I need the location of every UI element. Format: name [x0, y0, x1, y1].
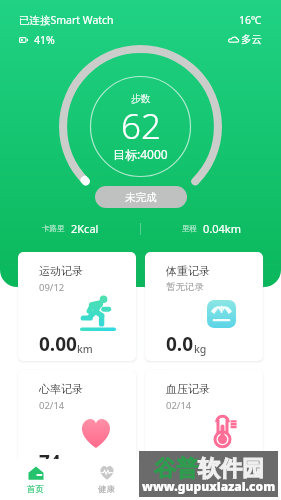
button[interactable]: 体重记录 — [145, 252, 263, 361]
staticText: 运动记录 — [39, 264, 83, 278]
staticText: 0.00 — [39, 331, 77, 357]
staticText: 谷普 — [154, 455, 198, 483]
staticText: 软件园 — [198, 455, 264, 483]
staticText: 多云 — [241, 33, 262, 46]
staticText: 首页 — [27, 484, 44, 495]
button[interactable]: 未完成 — [95, 186, 187, 208]
staticText: www.gupuxlazal.com — [142, 478, 276, 494]
staticText: 卡路里 — [42, 224, 65, 233]
staticText: 步数 — [131, 93, 151, 105]
staticText: 未完成 — [125, 191, 157, 204]
staticText: 09/12 — [39, 281, 65, 294]
staticText: 心率记录 — [39, 382, 83, 396]
staticText: /80 — [199, 460, 216, 474]
staticText: kg — [194, 342, 207, 356]
button[interactable]: 运动记录 — [18, 252, 136, 361]
staticText: 16℃ — [239, 13, 262, 27]
button[interactable]: 设备 — [141, 459, 211, 500]
staticText: 0.0 — [166, 331, 194, 357]
staticText: 41% — [34, 33, 55, 47]
staticText: 74 — [39, 449, 61, 475]
staticText: km — [77, 342, 93, 356]
staticText: 健康 — [98, 484, 115, 495]
staticText: 已连接Smart Watch — [19, 13, 114, 27]
staticText: 血压记录 — [166, 382, 210, 396]
button[interactable]: 健康 — [71, 459, 141, 500]
staticText: 02/14 — [39, 399, 65, 412]
staticText: 目标:4000 — [113, 146, 168, 162]
staticText: 0.04km — [203, 221, 241, 236]
staticText: 02/14 — [166, 399, 192, 412]
button[interactable]: 首页 — [0, 459, 71, 500]
button[interactable]: 心率记录 — [18, 370, 136, 479]
button[interactable]: 血压记录 — [145, 370, 263, 479]
staticText: 我的 — [238, 484, 255, 495]
staticText: 设备 — [168, 484, 185, 495]
staticText: 120 — [166, 449, 199, 475]
staticText: 62 — [121, 102, 161, 150]
staticText: 体重记录 — [166, 264, 210, 278]
button[interactable]: 我的 — [211, 459, 281, 500]
staticText: 暂无记录 — [166, 281, 204, 293]
staticText: 里程 — [182, 224, 197, 233]
staticText: 2Kcal — [71, 221, 99, 236]
